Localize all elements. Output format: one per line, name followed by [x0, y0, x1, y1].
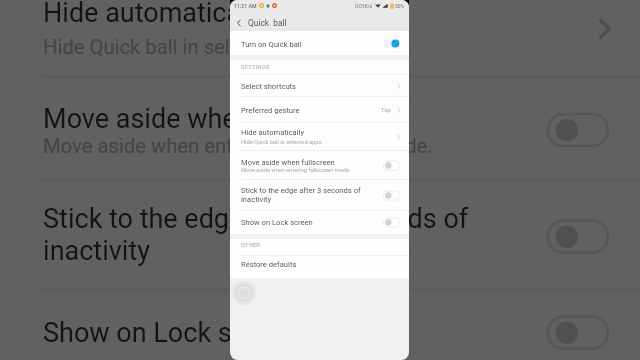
button[interactable]: Turn on [548, 114, 608, 146]
button[interactable]: Quick ball [232, 281, 256, 305]
staticText: SETTINGS [241, 64, 270, 71]
button[interactable]: Show on Lock screen [4, 292, 640, 360]
button[interactable]: Stick to the edge after 3 seconds of ina… [230, 180, 409, 210]
staticText: Move aside when fullscreen [241, 158, 335, 167]
button[interactable]: Turn on [383, 191, 400, 200]
staticText: Hide automatically [43, 0, 270, 29]
staticText: Hide Quick ball in selected apps. [241, 139, 323, 146]
button[interactable]: Turn on [548, 221, 608, 253]
staticText: Tap [381, 107, 391, 114]
staticText: Stick to the edge after 3 seconds of ina… [241, 186, 369, 204]
button[interactable]: Turn on [548, 317, 608, 349]
button[interactable]: Select shortcuts [230, 75, 409, 96]
button[interactable]: Turn on Quick ball [230, 31, 409, 55]
staticText: Move aside when entering fullscreen mode… [43, 135, 434, 160]
button[interactable]: Turn on [383, 218, 400, 227]
button[interactable]: Turn on [383, 161, 400, 170]
staticText: Hide Quick ball in selected apps. [43, 36, 334, 61]
staticText: 50% [395, 3, 405, 9]
staticText: Move aside when fullscreen [43, 103, 377, 135]
staticText: Preferred gesture [241, 106, 300, 115]
button[interactable]: Move aside when fullscreen [4, 79, 640, 178]
button[interactable]: Show on Lock screen [230, 211, 409, 234]
staticText: Turn on Quick ball [241, 40, 302, 49]
button[interactable]: Preferred gesture [230, 97, 409, 122]
staticText: 0.01K/s [355, 3, 373, 9]
button[interactable]: Move aside when fullscreen [230, 151, 409, 179]
button[interactable]: Hide automatically [4, 0, 640, 75]
staticText: Show on Lock screen [43, 317, 299, 349]
staticText: Move aside when entering fullscreen mode… [241, 167, 351, 174]
staticText: Hide automatically [241, 128, 305, 137]
button[interactable]: Stick to the edge after 3 seconds of ina… [4, 182, 640, 288]
staticText: OTHER [241, 242, 261, 249]
button[interactable]: Restore defaults [230, 256, 409, 278]
staticText: Restore defaults [241, 260, 297, 269]
staticText: 11:21 AM [234, 3, 257, 9]
button[interactable]: Back [230, 14, 247, 31]
staticText: Select shortcuts [241, 82, 296, 91]
button[interactable]: Hide automatically [230, 123, 409, 150]
button[interactable]: Turn off [383, 39, 400, 48]
staticText: Stick to the edge after 3 seconds of ina… [43, 203, 498, 267]
staticText: Show on Lock screen [241, 218, 313, 227]
staticText: Quick ball [248, 18, 287, 28]
